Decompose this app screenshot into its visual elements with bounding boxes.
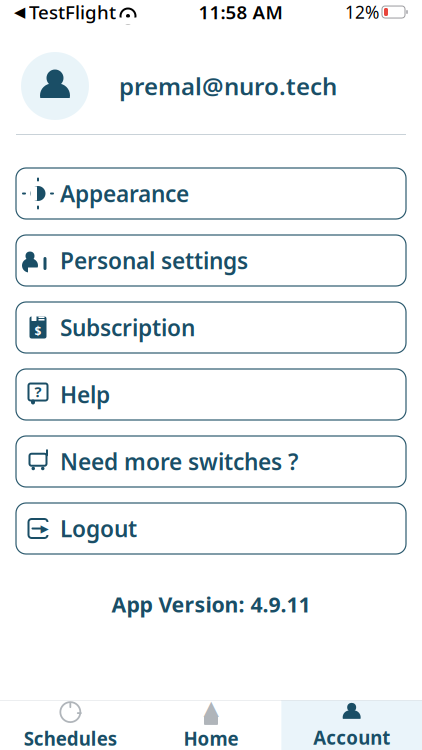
button[interactable]: Account [281, 700, 422, 750]
staticText: Appearance [60, 178, 189, 208]
staticText: 11:58 AM [198, 0, 282, 24]
staticText: Schedules [24, 726, 117, 750]
staticText: Account [313, 725, 390, 750]
staticText: ▶ [40, 522, 48, 534]
button[interactable]: Need more switches ? [16, 436, 406, 487]
button[interactable]: ▲ [141, 700, 281, 750]
button[interactable]: ▶ [16, 503, 406, 554]
staticText: App Version: 4.9.11 [111, 590, 310, 618]
staticText: Subscription [60, 312, 195, 342]
staticText: 12% [345, 0, 379, 23]
staticText: ▲ [203, 696, 218, 719]
staticText: Need more switches ? [60, 446, 298, 476]
staticText: Personal settings [60, 245, 248, 275]
staticText: premal@nuro.tech [119, 70, 337, 102]
button[interactable]: ? [16, 369, 406, 420]
staticText: Help [60, 379, 110, 409]
button[interactable]: Personal settings [16, 235, 406, 286]
button[interactable]: Appearance [16, 168, 406, 219]
staticText: Logout [60, 513, 137, 543]
button[interactable]: $ [16, 302, 406, 353]
button[interactable]: Schedules [0, 700, 141, 750]
staticText: $ [34, 323, 41, 339]
staticText: TestFlight [29, 0, 116, 24]
staticText: Home [183, 726, 238, 750]
staticText: ? [34, 382, 41, 401]
staticText: ◀ [14, 4, 25, 20]
